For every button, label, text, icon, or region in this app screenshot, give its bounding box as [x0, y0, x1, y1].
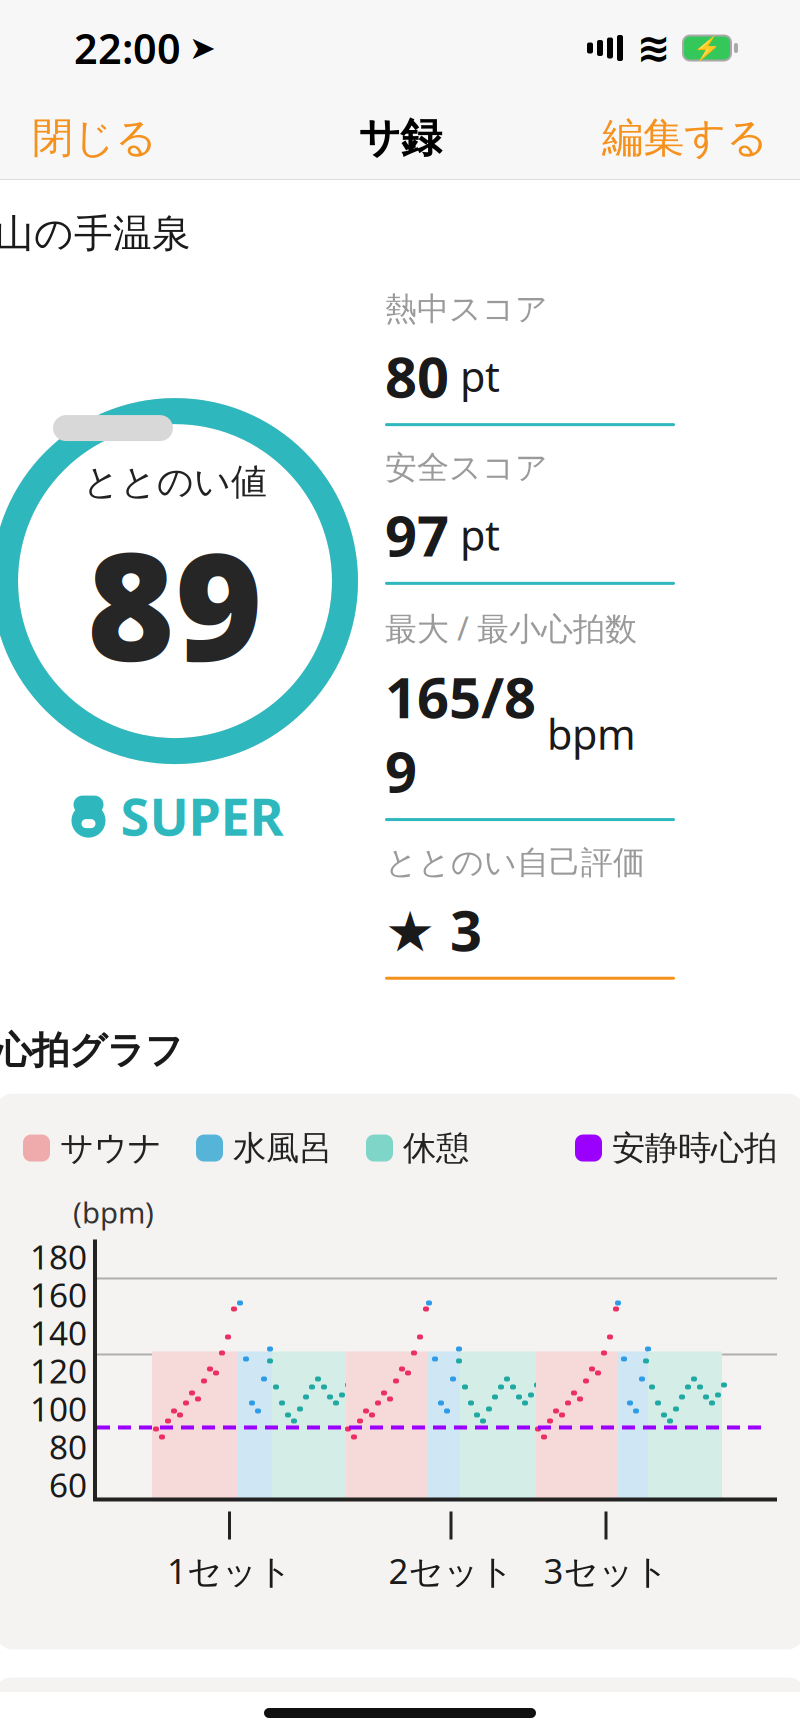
- staticText: ベーシックプランでの心拍データ保存期間は 30 日です: [15, 1703, 784, 1734]
- staticText: 100: [30, 1386, 87, 1431]
- staticText: pt: [449, 507, 500, 562]
- staticText: 安静時心拍: [612, 1128, 777, 1168]
- staticText: 80: [49, 1424, 87, 1469]
- staticText: 140: [30, 1310, 87, 1355]
- staticText: 2セット: [388, 1547, 513, 1593]
- staticText: 120: [30, 1348, 87, 1393]
- staticText: (bpm): [73, 1192, 154, 1231]
- staticText: サウナ: [60, 1128, 162, 1168]
- button[interactable]: 閉じる: [4, 99, 185, 177]
- staticText: 休憩: [403, 1128, 469, 1168]
- staticText: 編集する: [602, 113, 768, 163]
- staticText: 熱中スコア: [385, 289, 548, 329]
- staticText: ととのい値: [83, 460, 267, 504]
- staticText: 97: [385, 497, 449, 572]
- staticText: 3セット: [543, 1547, 668, 1593]
- staticText: 165/89: [385, 659, 536, 808]
- staticText: サ録: [358, 113, 441, 163]
- staticText: 1セット: [167, 1547, 292, 1593]
- staticText: 180: [30, 1234, 87, 1279]
- staticText: 80: [385, 339, 449, 413]
- staticText: 安全スコア: [385, 448, 548, 487]
- staticText: pt: [449, 348, 500, 403]
- staticText: 最大 / 最小心拍数: [385, 607, 637, 649]
- staticText: 山の手温泉: [0, 210, 191, 257]
- staticText: 心拍グラフ: [0, 1028, 183, 1074]
- staticText: ➤: [189, 30, 216, 66]
- button[interactable]: 編集する: [574, 99, 796, 177]
- staticText: 閉じる: [32, 113, 157, 163]
- staticText: 22:00: [74, 21, 181, 75]
- staticText: 水風呂: [233, 1128, 332, 1168]
- staticText: ⚡: [693, 35, 721, 61]
- staticText: 160: [30, 1272, 87, 1317]
- staticText: ★ 3: [385, 892, 482, 967]
- staticText: ととのい自己評価: [385, 843, 645, 882]
- staticText: ≋: [637, 25, 671, 71]
- staticText: 60: [49, 1462, 87, 1507]
- staticText: SUPER: [120, 781, 283, 850]
- staticText: bpm: [536, 706, 636, 761]
- staticText: 89: [87, 504, 263, 702]
